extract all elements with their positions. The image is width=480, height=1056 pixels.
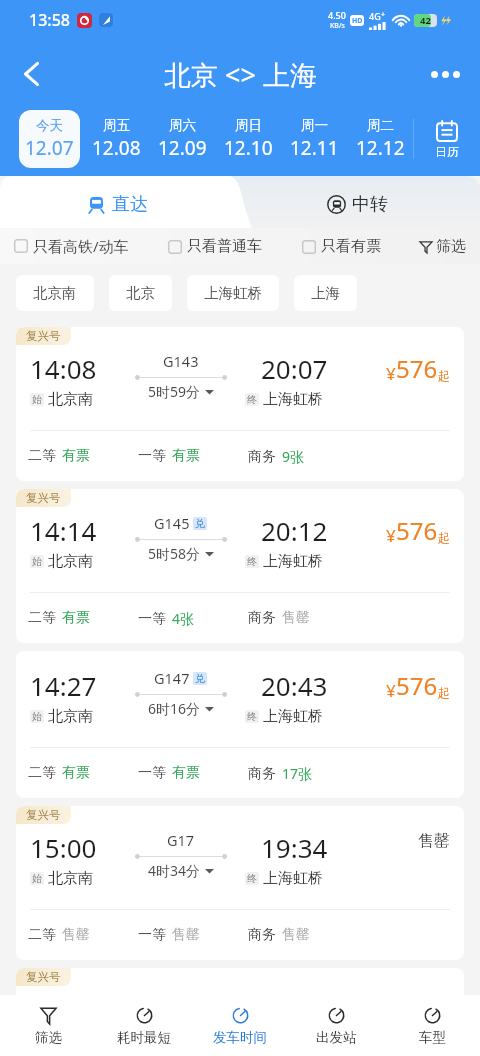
staticText: ¥ — [386, 524, 396, 547]
staticText: 5时59分 — [148, 382, 201, 401]
staticText: 起 — [438, 1009, 450, 1024]
button[interactable]: Calendar — [414, 110, 480, 168]
staticText: 周五 — [103, 117, 130, 134]
button[interactable]: 今天 — [19, 110, 80, 168]
staticText: 17张 — [282, 764, 313, 783]
staticText: 售罄 — [418, 831, 450, 851]
staticText: 商务 — [248, 609, 276, 627]
staticText: 终 — [247, 555, 257, 568]
staticText: 周六 — [169, 117, 196, 134]
staticText: 一等 — [138, 447, 166, 465]
staticText: 复兴号 — [26, 329, 61, 343]
button[interactable]: 周一 — [284, 110, 344, 168]
staticText: 12.08 — [92, 135, 141, 161]
staticText: 耗时最短 — [117, 1029, 171, 1046]
button[interactable]: Back — [0, 46, 50, 96]
staticText: 有票 — [62, 447, 90, 465]
button[interactable]: 复兴号 — [16, 489, 464, 643]
staticText: 二等 — [28, 926, 56, 944]
staticText: 兑 — [195, 672, 205, 685]
staticText: 出发站 — [316, 1029, 357, 1046]
staticText: 终 — [247, 710, 257, 723]
staticText: ¥ — [386, 679, 396, 702]
button[interactable]: 北京南 — [16, 275, 94, 311]
staticText: 上海虹桥 — [263, 869, 323, 888]
staticText: 北京南 — [48, 869, 93, 888]
staticText: 20:07 — [261, 351, 328, 386]
staticText: + — [381, 10, 386, 20]
button[interactable]: 复兴号 — [16, 968, 464, 1056]
staticText: 上海虹桥 — [204, 284, 262, 302]
staticText: 车型 — [419, 1029, 446, 1046]
staticText: 4时34分 — [148, 861, 201, 880]
staticText: 14:14 — [30, 513, 97, 548]
staticText: 上海虹桥 — [263, 1031, 323, 1050]
staticText: 周日 — [235, 117, 262, 134]
staticText: 15:08 — [30, 992, 97, 1027]
button[interactable]: 耗时最短 — [96, 995, 192, 1056]
staticText: 20:12 — [261, 513, 328, 548]
staticText: 复兴号 — [26, 491, 61, 505]
staticText: 12.09 — [158, 135, 207, 161]
staticText: 售罄 — [172, 926, 200, 944]
staticText: 复兴号 — [26, 970, 61, 984]
staticText: 12.11 — [290, 135, 339, 161]
button[interactable]: 上海虹桥 — [187, 275, 279, 311]
button[interactable]: 出发站 — [288, 995, 384, 1056]
staticText: 一等 — [138, 764, 166, 782]
button[interactable]: 复兴号 — [16, 327, 464, 481]
staticText: 有票 — [62, 764, 90, 782]
staticText: 复兴号 — [26, 808, 61, 822]
button[interactable]: 周六 — [152, 110, 212, 168]
staticText: 始 — [32, 393, 42, 406]
staticText: 576 — [396, 352, 438, 385]
staticText: KB/s — [330, 21, 345, 31]
staticText: G143 — [163, 351, 199, 371]
button[interactable]: 车型 — [384, 995, 480, 1056]
staticText: 5时58分 — [148, 544, 201, 563]
button[interactable]: 筛选 — [420, 233, 466, 260]
button[interactable]: 只看高铁/动车 — [14, 232, 129, 260]
staticText: 42 — [420, 14, 431, 27]
staticText: 终 — [247, 1034, 257, 1047]
staticText: 今天 — [36, 117, 63, 134]
staticText: 19:34 — [261, 830, 328, 865]
button[interactable]: 周日 — [218, 110, 278, 168]
button[interactable]: 筛选 — [0, 995, 96, 1056]
button[interactable]: 周二 — [350, 110, 410, 168]
button[interactable]: 北京 — [109, 275, 172, 311]
staticText: 576 — [396, 993, 438, 1026]
staticText: 4G — [369, 10, 381, 22]
staticText: 有票 — [172, 447, 200, 465]
staticText: 二等 — [28, 764, 56, 782]
staticText: 一等 — [138, 926, 166, 944]
button[interactable]: 直达 — [0, 176, 235, 228]
staticText: 始 — [32, 872, 42, 885]
staticText: 13:58 — [29, 9, 70, 31]
staticText: 576 — [396, 514, 438, 547]
button[interactable]: 周五 — [86, 110, 146, 168]
staticText: 15:00 — [30, 830, 97, 865]
staticText: 只看普通车 — [187, 237, 262, 256]
staticText: 售罄 — [282, 926, 310, 944]
button[interactable]: 复兴号 — [16, 806, 464, 960]
button[interactable]: 只看普通车 — [168, 233, 262, 260]
staticText: 日历 — [435, 144, 459, 159]
button[interactable]: 上海 — [294, 275, 357, 311]
staticText: 只看高铁/动车 — [33, 236, 129, 256]
staticText: 始 — [32, 710, 42, 723]
button[interactable]: 中转 — [235, 176, 480, 228]
staticText: 发车时间 — [213, 1029, 267, 1046]
button[interactable]: 发车时间 — [192, 995, 288, 1056]
staticText: 北京南 — [48, 552, 93, 571]
button[interactable]: 14:27 — [16, 651, 464, 798]
staticText: 商务 — [248, 926, 276, 944]
staticText: 北京南 — [48, 707, 93, 726]
staticText: 北京 — [126, 284, 155, 302]
button[interactable]: More options — [428, 40, 480, 102]
button[interactable]: 只看有票 — [302, 233, 381, 260]
staticText: 有票 — [172, 764, 200, 782]
